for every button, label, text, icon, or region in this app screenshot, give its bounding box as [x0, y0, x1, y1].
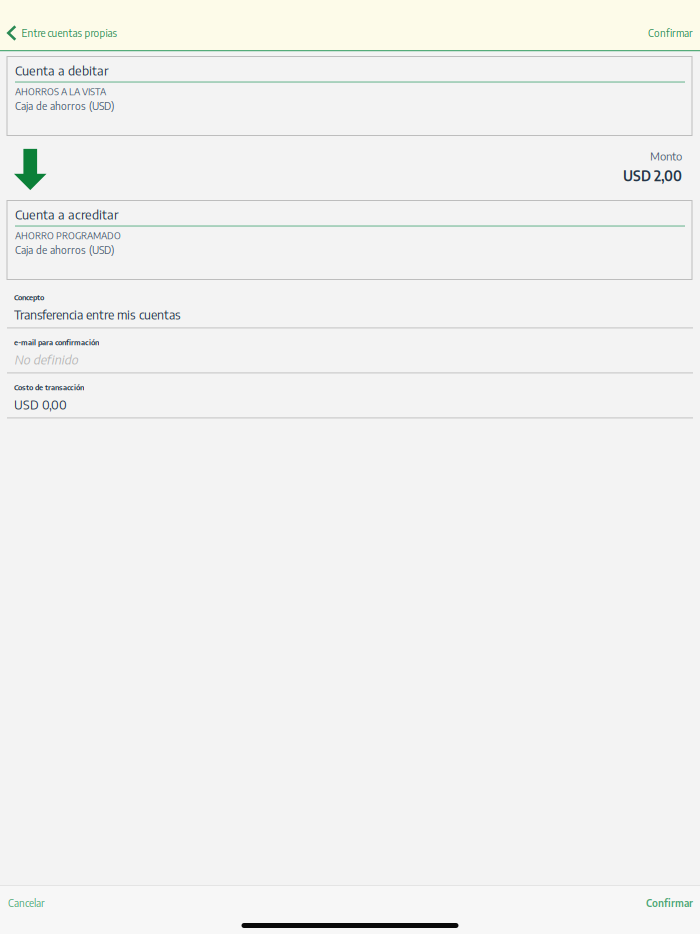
- button[interactable]: Confirmar: [634, 886, 700, 920]
- staticText: Confirmar: [646, 897, 693, 909]
- staticText: Cuenta a debitar: [15, 62, 109, 78]
- staticText: Monto: [650, 149, 682, 163]
- button[interactable]: Cancelar: [0, 886, 57, 920]
- staticText: Concepto: [14, 292, 44, 302]
- staticText: Cancelar: [8, 897, 45, 909]
- staticText: Entre cuentas propias: [22, 27, 118, 39]
- staticText: Caja de ahorros (USD): [15, 243, 114, 256]
- staticText: Cuenta a acreditar: [15, 206, 119, 222]
- staticText: Caja de ahorros (USD): [15, 99, 114, 112]
- staticText: Confirmar: [648, 27, 693, 39]
- staticText: Costo de transacción: [14, 382, 84, 392]
- button[interactable]: Entre cuentas propias: [0, 16, 128, 50]
- staticText: e-mail para confirmación: [14, 337, 99, 347]
- staticText: USD 2,00: [623, 167, 682, 184]
- staticText: AHORRO PROGRAMADO: [15, 230, 121, 241]
- staticText: Transferencia entre mis cuentas: [14, 307, 181, 322]
- staticText: No definido: [14, 352, 78, 367]
- button[interactable]: Confirmar: [638, 16, 700, 50]
- staticText: AHORROS A LA VISTA: [15, 86, 106, 97]
- staticText: USD 0,00: [14, 397, 67, 412]
